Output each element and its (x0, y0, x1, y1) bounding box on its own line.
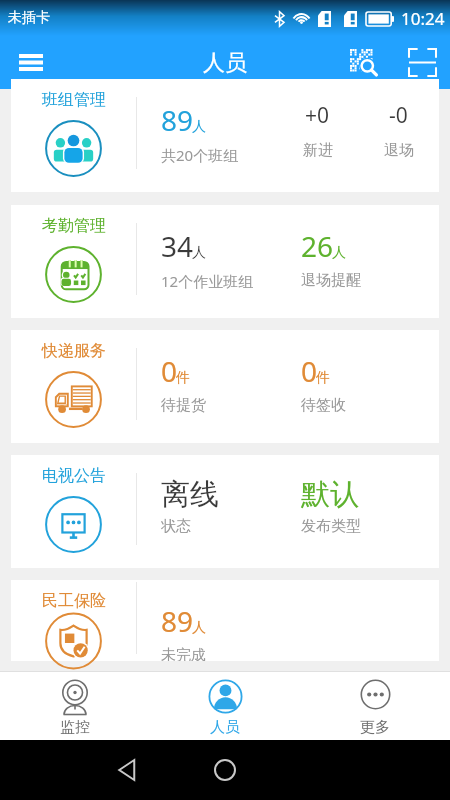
staticText: 监控 (60, 718, 90, 737)
staticText: 件 (176, 369, 190, 387)
staticText: 10:24 (401, 7, 445, 30)
staticText: 待签收 (301, 396, 346, 415)
staticText: 0 (161, 352, 178, 390)
staticText: 班组管理 (42, 90, 106, 110)
button[interactable]: 快递服务 (11, 330, 439, 443)
button[interactable]: 更多 (300, 671, 450, 740)
staticText: 人 (192, 118, 206, 136)
staticText: 电视公告 (42, 466, 106, 486)
button[interactable]: Scan (394, 36, 450, 89)
staticText: 件 (316, 369, 330, 387)
button[interactable]: Scan QR code (331, 36, 394, 89)
button[interactable]: 考勤管理 (11, 205, 439, 318)
staticText: -0 (389, 101, 408, 130)
staticText: 人员 (203, 49, 247, 77)
button[interactable]: 班组管理 (11, 79, 439, 192)
staticText: +0 (305, 101, 330, 130)
staticText: 人 (332, 244, 346, 262)
staticText: 未插卡 (8, 9, 50, 27)
staticText: 待提货 (161, 396, 206, 415)
staticText: 状态 (161, 517, 191, 536)
staticText: 发布类型 (301, 517, 361, 536)
staticText: 34 (161, 227, 194, 265)
staticText: 默认 (301, 476, 359, 513)
staticText: 共20个班组 (161, 145, 239, 165)
staticText: 26 (301, 227, 334, 265)
staticText: 新进 (303, 141, 333, 160)
button[interactable]: Menu (0, 36, 62, 89)
staticText: 89 (161, 101, 194, 139)
staticText: 人 (192, 244, 206, 262)
staticText: 考勤管理 (42, 216, 106, 236)
staticText: 民工保险 (42, 591, 106, 611)
staticText: 快递服务 (42, 341, 106, 361)
staticText: 退场 (384, 141, 414, 160)
button[interactable]: 监控 (0, 671, 150, 740)
button[interactable]: 电视公告 (11, 455, 439, 568)
staticText: 89 (161, 602, 194, 640)
staticText: 人 (192, 619, 206, 637)
staticText: 离线 (161, 476, 219, 513)
button[interactable]: 人员 (150, 671, 300, 740)
button[interactable]: 民工保险 (11, 580, 439, 661)
staticText: 未完成 (161, 646, 206, 661)
staticText: 12个作业班组 (161, 271, 254, 291)
staticText: 更多 (360, 718, 390, 737)
staticText: 人员 (210, 718, 240, 737)
staticText: 退场提醒 (301, 271, 361, 290)
staticText: 0 (301, 352, 318, 390)
